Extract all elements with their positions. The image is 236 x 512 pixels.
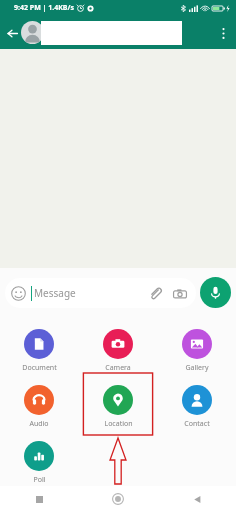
staticText: Audio xyxy=(29,419,49,429)
button[interactable]: Camera xyxy=(92,323,144,373)
staticText: 9:42 PM | 1.4KB/s xyxy=(14,3,74,13)
button[interactable]: Audio xyxy=(13,379,65,429)
button[interactable]: Location xyxy=(92,379,144,429)
button[interactable]: Document xyxy=(13,323,65,373)
button[interactable]: Back xyxy=(186,488,208,510)
button[interactable]: Attach xyxy=(147,285,164,302)
button[interactable]: Home xyxy=(107,488,129,510)
staticText: Document xyxy=(22,363,57,373)
staticText: Gallery xyxy=(185,363,209,373)
button[interactable]: Message xyxy=(5,278,196,308)
button[interactable]: Recent apps xyxy=(28,488,50,510)
button[interactable]: Contact xyxy=(171,379,223,429)
button[interactable]: Gallery xyxy=(171,323,223,373)
staticText: Camera xyxy=(105,363,131,373)
button[interactable]: Record voice message xyxy=(200,277,231,308)
button[interactable]: Profile photo xyxy=(21,21,44,44)
staticText: Message xyxy=(34,286,76,300)
staticText: Poll xyxy=(33,475,46,485)
staticText: Contact xyxy=(184,419,210,429)
button[interactable]: Poll xyxy=(13,435,65,485)
button[interactable]: Camera xyxy=(171,285,188,302)
staticText: Location xyxy=(104,419,133,429)
button[interactable]: Back xyxy=(3,24,21,42)
button[interactable]: More options xyxy=(213,23,233,43)
